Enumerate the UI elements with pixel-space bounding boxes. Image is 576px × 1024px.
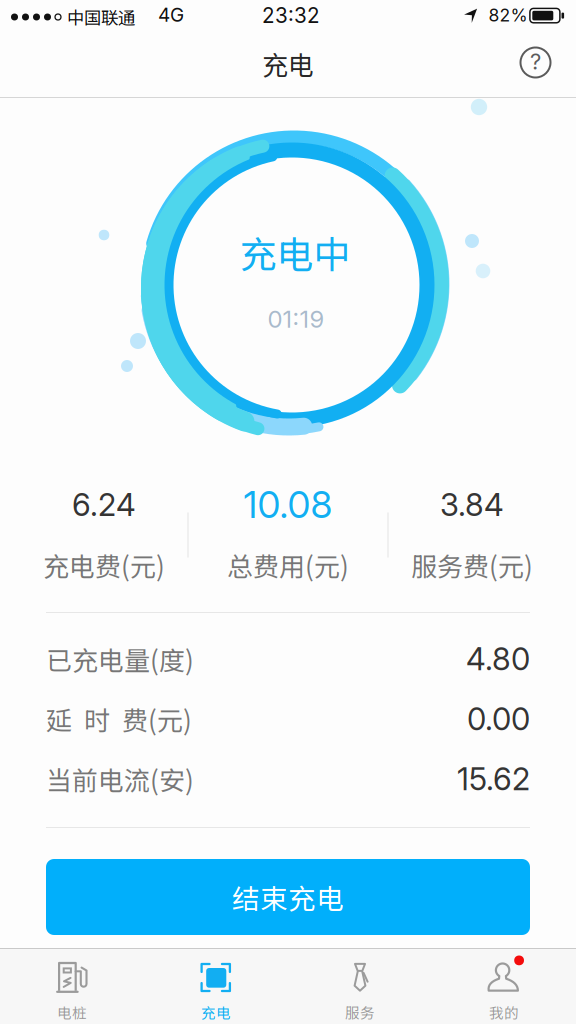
button[interactable]: 电桩	[0, 948, 144, 1024]
staticText: 4.80	[466, 640, 530, 678]
staticText: 6.24	[72, 486, 136, 523]
button[interactable]: 结束充电	[46, 859, 530, 935]
staticText: 0.00	[467, 700, 530, 738]
staticText: 当前电流(安)	[46, 760, 194, 798]
staticText: 延 时 费(元)	[46, 700, 192, 738]
staticText: 已充电量(度)	[46, 640, 194, 678]
staticText: 4G	[158, 3, 184, 26]
button[interactable]: 服务	[288, 948, 432, 1024]
button[interactable]: 我的	[432, 948, 576, 1024]
button[interactable]: Help	[512, 39, 558, 85]
staticText: 82%	[488, 5, 527, 26]
button[interactable]: 充电	[144, 948, 288, 1024]
staticText: 电桩	[57, 1002, 87, 1023]
staticText: 23:32	[262, 3, 320, 28]
staticText: 充电	[262, 45, 314, 82]
staticText: 结束充电	[232, 877, 344, 917]
staticText: 总费用(元)	[227, 546, 349, 584]
staticText: 3.84	[440, 486, 504, 523]
staticText: 15.62	[457, 760, 530, 798]
staticText: 中国联通	[67, 4, 135, 29]
staticText: 服务费(元)	[411, 546, 533, 584]
staticText: 10.08	[243, 482, 332, 527]
staticText: ?	[530, 48, 541, 75]
staticText: 充电	[201, 1002, 231, 1023]
staticText: 充电费(元)	[43, 546, 165, 584]
staticText: 服务	[345, 1002, 375, 1023]
staticText: 我的	[489, 1002, 519, 1023]
staticText: 充电中	[239, 225, 350, 279]
staticText: 01:19	[267, 304, 324, 333]
